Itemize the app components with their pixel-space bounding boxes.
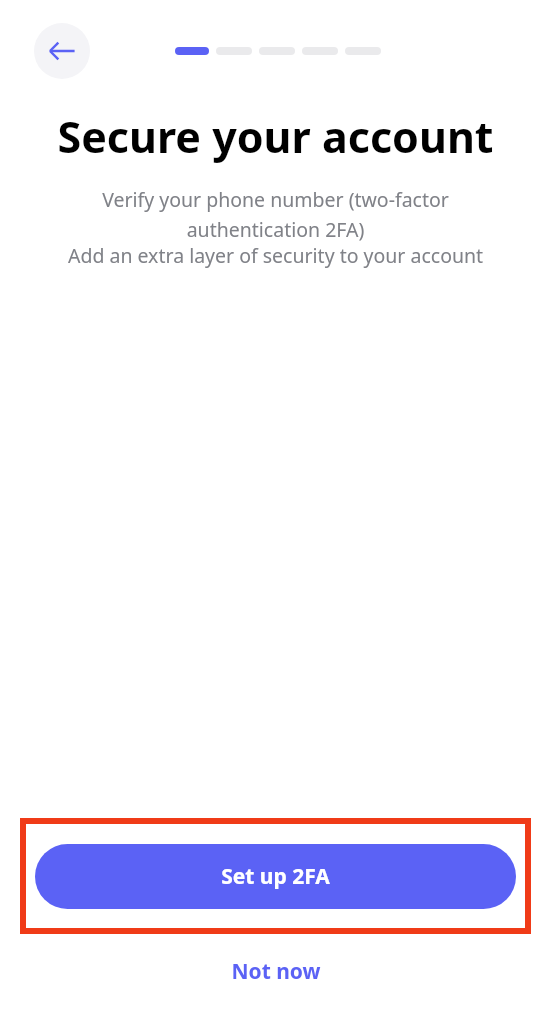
staticText: Secure your account [16,107,535,166]
staticText: Add an extra layer of security to your a… [20,242,531,269]
button[interactable]: Not now [213,951,339,992]
button[interactable]: Back [34,23,90,79]
staticText: Verify your phone number (two-factor aut… [46,186,505,242]
staticText: Set up 2FA [221,862,330,891]
staticText: Not now [231,957,321,986]
button[interactable]: Set up 2FA [35,844,516,909]
